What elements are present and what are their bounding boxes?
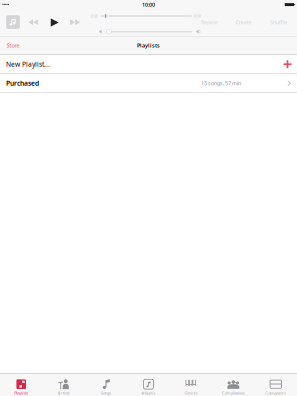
button[interactable]: Now Playing	[6, 15, 20, 29]
button[interactable]: Artists	[42, 373, 85, 396]
staticText: -0:00	[193, 13, 201, 19]
button[interactable]: Next	[68, 15, 82, 29]
staticText: Genres	[184, 390, 197, 395]
button[interactable]: Repeat	[196, 17, 224, 28]
staticText: 10:00	[142, 1, 155, 8]
staticText: Composers	[265, 390, 286, 395]
button[interactable]: New Playlist...	[0, 55, 297, 73]
staticText: New Playlist...	[6, 60, 50, 69]
staticText: Purchased	[6, 79, 39, 88]
staticText: 13 songs, 57 min	[201, 80, 241, 87]
button[interactable]: Previous	[26, 15, 40, 29]
staticText: Compilations	[222, 390, 245, 395]
button[interactable]: Albums	[127, 373, 170, 396]
staticText: Playlists	[137, 42, 160, 49]
button[interactable]: Playlists	[0, 373, 42, 396]
button[interactable]: Songs	[85, 373, 127, 396]
button[interactable]: Shuffle	[264, 17, 292, 28]
button[interactable]: Composers	[255, 373, 297, 396]
staticText: Songs	[101, 390, 111, 395]
staticText: Repeat	[201, 19, 218, 26]
button[interactable]: Create	[229, 17, 257, 28]
staticText: Store	[6, 42, 19, 49]
button[interactable]: Genres	[170, 373, 212, 396]
staticText: Artists	[58, 390, 70, 395]
staticText: Playlists	[14, 390, 28, 395]
staticText: -0:00	[90, 13, 98, 19]
button[interactable]: Purchased	[0, 74, 297, 92]
button[interactable]: Store	[2, 38, 24, 52]
button[interactable]: Compilations	[212, 373, 254, 396]
staticText: Albums	[141, 390, 155, 395]
staticText: Create	[235, 19, 251, 26]
staticText: Shuffle	[270, 19, 287, 26]
button[interactable]: Play	[48, 15, 62, 29]
